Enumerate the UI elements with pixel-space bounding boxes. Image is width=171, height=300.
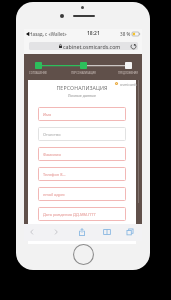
staticText: osmicards	[120, 82, 138, 87]
button[interactable]	[38, 227, 126, 241]
staticText: Личные данные	[28, 93, 136, 98]
staticText: cabinet.osmicards.com	[63, 43, 121, 50]
staticText: 38 %	[120, 31, 131, 37]
button[interactable]: Bookmarks	[100, 224, 114, 241]
staticText: email адрес	[43, 192, 65, 197]
button[interactable]: email адрес	[38, 187, 126, 201]
staticText: Дата рождения ДД.ММ.ГГГГ	[43, 212, 97, 217]
button[interactable]: ПРЕДЛОЖЕНИЯ	[111, 54, 145, 75]
button[interactable]: Reload	[129, 42, 138, 50]
staticText: ПЕРСОНАЛИЗАЦИЯ	[28, 84, 136, 91]
staticText: СОГЛАШЕНИЕ	[29, 71, 47, 75]
button[interactable]: Forward	[49, 224, 63, 241]
staticText: Отчество	[43, 132, 61, 137]
button[interactable]: СОГЛАШЕНИЕ	[21, 54, 55, 75]
staticText: Назад, с «Wallet»	[29, 31, 67, 37]
staticText: 18:21	[87, 30, 100, 37]
staticText: Фамилия	[43, 152, 61, 157]
staticText: Телефон 8...	[43, 172, 66, 177]
button[interactable]: Share	[75, 224, 89, 241]
button[interactable]: Телефон 8...	[38, 167, 126, 181]
button[interactable]: Фамилия	[38, 147, 126, 161]
button[interactable]: Имя	[38, 107, 126, 121]
button[interactable]: Назад, с «Wallet»	[26, 31, 67, 37]
staticText: ПЕРСОНАЛИЗАЦИЯ	[71, 71, 96, 75]
button[interactable]: ПЕРСОНАЛИЗАЦИЯ	[66, 54, 100, 75]
button[interactable]: Отчество	[38, 127, 126, 141]
button[interactable]: Tabs	[123, 224, 137, 241]
button[interactable]: Back	[25, 224, 39, 241]
button[interactable]: cabinet.osmicards.com	[29, 42, 138, 50]
staticText: Имя	[43, 112, 52, 117]
button[interactable]: Дата рождения ДД.ММ.ГГГГ	[38, 207, 126, 221]
staticText: ПРЕДЛОЖЕНИЯ	[118, 71, 138, 75]
